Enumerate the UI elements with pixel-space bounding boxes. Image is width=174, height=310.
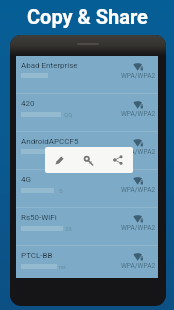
button[interactable]: 4G (16, 170, 158, 207)
staticText: 5 (59, 187, 63, 194)
staticText: Copy & Share (27, 5, 148, 28)
staticText: nn (59, 263, 66, 270)
button[interactable]: 420 (16, 94, 158, 131)
staticText: WPA/WPA2 (121, 262, 156, 270)
button[interactable]: Rs50-WiFi (16, 208, 158, 245)
button[interactable]: Edit (45, 147, 74, 173)
staticText: Rs50-WiFi (21, 213, 57, 222)
staticText: Abad Enterprise (21, 61, 78, 70)
staticText: AndroidAPCCF5 (21, 137, 79, 146)
staticText: WPA/WPA2 (121, 224, 156, 232)
button[interactable]: Show password (74, 147, 103, 173)
staticText: PTCL-BB (21, 251, 53, 260)
staticText: WPA/WPA2 (121, 110, 156, 118)
button[interactable]: AndroidAPCCF5 (16, 132, 158, 169)
staticText: 4G (21, 175, 31, 184)
staticText: WPA/WPA2 (121, 72, 156, 80)
button[interactable]: Abad Enterprise (16, 56, 158, 93)
button[interactable]: Share (103, 147, 133, 173)
staticText: 23 (65, 225, 72, 232)
staticText: 420 (21, 99, 35, 108)
staticText: WPA/WPA2 (121, 148, 156, 156)
button[interactable]: PTCL-BB (16, 246, 158, 278)
staticText: WPA/WPA2 (121, 186, 156, 194)
staticText: QQ (64, 111, 73, 118)
